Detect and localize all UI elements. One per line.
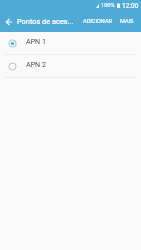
staticText: ADICIONAR [83,18,112,25]
staticText: 100% [101,2,115,9]
staticText: MAIS [120,18,134,25]
button[interactable]: APN 1 [0,32,141,54]
staticText: 12:00 [122,2,139,10]
button[interactable]: Back [0,12,17,32]
staticText: Pontos de aces... [17,17,74,26]
staticText: APN 2 [26,60,46,68]
button[interactable]: ADICIONAR [79,11,116,32]
button[interactable]: APN 2 [0,55,141,77]
staticText: APN 1 [26,37,46,45]
button[interactable]: MAIS [116,11,138,32]
